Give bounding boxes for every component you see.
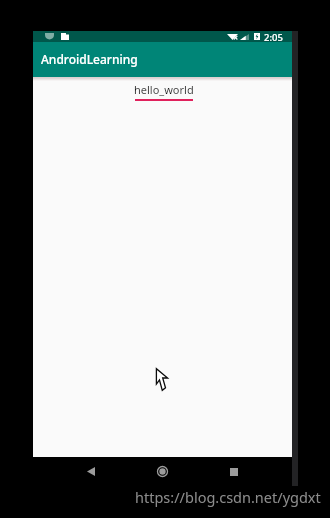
button[interactable]: Back [76,457,106,486]
staticText: https://blog.csdn.net/ygdxt [135,487,321,507]
button[interactable]: Recent apps [219,457,249,486]
button[interactable]: Home [147,457,178,486]
staticText: hello_world [134,82,194,97]
staticText: AndroidLearning [41,51,138,67]
staticText: 2:05 [264,31,283,42]
button[interactable]: AndroidLearning [33,42,292,77]
